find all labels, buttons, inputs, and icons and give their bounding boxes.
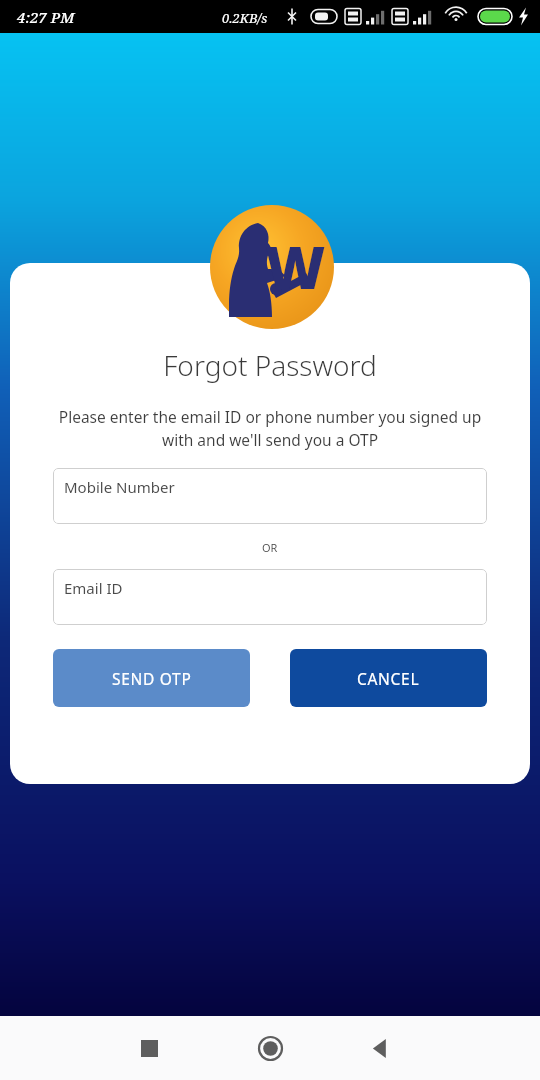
button[interactable]: Recents <box>130 1029 168 1067</box>
staticText: Please enter the email ID or phone numbe… <box>44 406 496 451</box>
staticText: 4:27 PM <box>17 7 75 27</box>
staticText: Email ID <box>64 578 123 598</box>
staticText: SEND OTP <box>112 668 192 689</box>
button[interactable]: Back <box>361 1029 399 1067</box>
staticText: W <box>265 227 326 306</box>
staticText: Mobile Number <box>64 477 175 497</box>
button[interactable]: SEND OTP <box>53 649 250 707</box>
staticText: CANCEL <box>357 668 420 689</box>
staticText: 0.2KB/s <box>222 9 268 27</box>
staticText: OR <box>262 540 278 555</box>
button[interactable]: Mobile Number <box>53 468 487 524</box>
other: App logo <box>210 205 334 329</box>
button[interactable]: CANCEL <box>290 649 487 707</box>
staticText: Forgot Password <box>163 346 377 384</box>
button[interactable]: Home <box>251 1029 289 1067</box>
button[interactable]: Email ID <box>53 569 487 625</box>
